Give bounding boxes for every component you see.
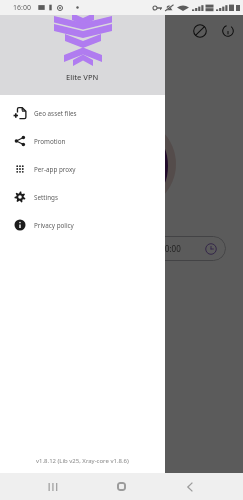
button[interactable]: 00:00:00: [17, 236, 226, 261]
staticText: Geo asset files: [34, 109, 77, 118]
button[interactable]: Back: [176, 473, 204, 500]
button[interactable]: Promotion: [0, 127, 165, 155]
button[interactable]: Geo asset files: [0, 99, 165, 127]
button[interactable]: Disable ads: [185, 16, 214, 45]
button[interactable]: Connect: [84, 118, 176, 210]
button[interactable]: Home: [107, 473, 135, 500]
staticText: Settings: [34, 193, 58, 202]
staticText: Privacy policy: [34, 221, 74, 230]
button[interactable]: Privacy policy: [0, 211, 165, 239]
staticText: Per-app proxy: [34, 165, 76, 174]
staticText: Promotion: [34, 137, 66, 146]
button[interactable]: Reconnect: [213, 16, 242, 45]
button[interactable]: Settings: [0, 183, 165, 211]
staticText: 00:00:00: [149, 243, 181, 254]
staticText: Elite VPN: [66, 72, 99, 82]
button[interactable]: Recents: [38, 473, 66, 500]
staticText: v1.8.12 (Lib v25, Xray-core v1.8.6): [36, 457, 129, 465]
button[interactable]: Per-app proxy: [0, 155, 165, 183]
staticText: 16:00: [13, 3, 31, 13]
